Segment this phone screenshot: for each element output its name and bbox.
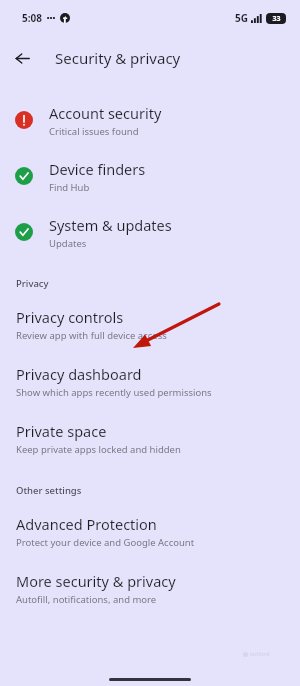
- staticText: techbird: [250, 651, 270, 658]
- staticText: Protect your device and Google Account: [16, 536, 195, 549]
- staticText: Privacy: [16, 277, 49, 290]
- staticText: Privacy controls: [16, 307, 124, 327]
- staticText: Autofill, notifications, and more: [16, 593, 157, 606]
- button[interactable]: Privacy controls: [0, 296, 300, 353]
- button[interactable]: Account security: [0, 92, 300, 148]
- staticText: 5:08: [22, 11, 42, 25]
- staticText: Security & privacy: [55, 48, 181, 68]
- button[interactable]: Private space: [0, 410, 300, 467]
- staticText: Advanced Protection: [16, 514, 157, 534]
- button[interactable]: Device finders: [0, 148, 300, 204]
- staticText: Keep private apps locked and hidden: [16, 443, 181, 456]
- staticText: 5G: [235, 11, 248, 25]
- staticText: Find Hub: [49, 181, 90, 194]
- staticText: Show which apps recently used permission…: [16, 386, 212, 399]
- button[interactable]: System & updates: [0, 204, 300, 260]
- staticText: Device finders: [49, 159, 146, 179]
- staticText: Critical issues found: [49, 125, 139, 138]
- staticText: System & updates: [49, 215, 172, 235]
- staticText: Privacy dashboard: [16, 364, 142, 384]
- staticText: Other settings: [16, 484, 82, 497]
- staticText: Review app with full device access: [16, 329, 167, 342]
- staticText: More security & privacy: [16, 571, 176, 591]
- button[interactable]: Back: [8, 44, 36, 72]
- staticText: Account security: [49, 103, 162, 123]
- staticText: Private space: [16, 421, 107, 441]
- button[interactable]: Advanced Protection: [0, 503, 300, 560]
- button[interactable]: More security & privacy: [0, 560, 300, 617]
- staticText: 33: [272, 14, 281, 24]
- staticText: Updates: [49, 237, 87, 250]
- button[interactable]: Privacy dashboard: [0, 353, 300, 410]
